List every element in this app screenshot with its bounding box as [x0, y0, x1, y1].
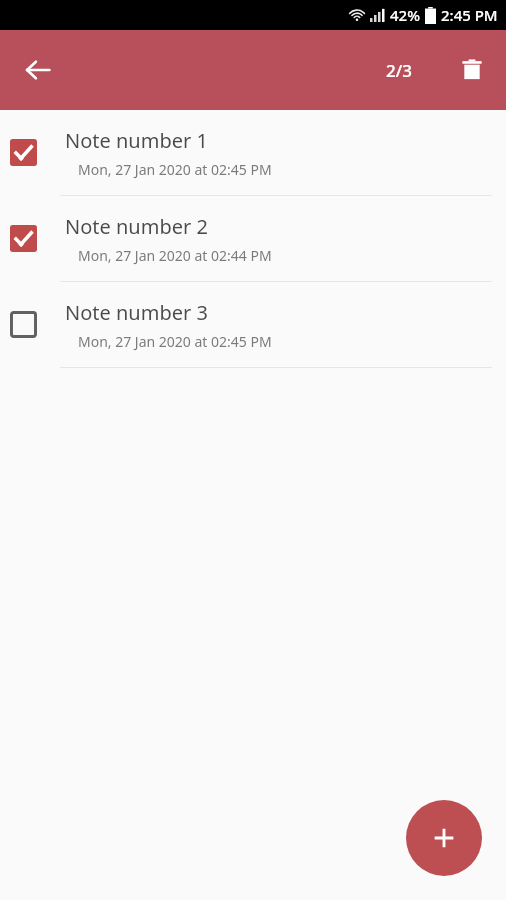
button[interactable]: Unchecked — [10, 311, 37, 338]
button[interactable]: Checked — [0, 196, 506, 281]
button[interactable]: Checked — [0, 110, 506, 195]
staticText: Note number 2 — [65, 213, 208, 240]
staticText: Mon, 27 Jan 2020 at 02:45 PM — [78, 160, 272, 179]
button[interactable]: Checked — [10, 225, 37, 252]
staticText: 2/3 — [386, 59, 412, 82]
button[interactable]: Unchecked — [0, 282, 506, 367]
staticText: Mon, 27 Jan 2020 at 02:44 PM — [78, 246, 272, 265]
button[interactable]: Add note — [406, 800, 482, 876]
staticText: 2:45 PM — [441, 5, 498, 25]
staticText: Mon, 27 Jan 2020 at 02:45 PM — [78, 332, 272, 351]
button[interactable]: Checked — [10, 139, 37, 166]
staticText: 42% — [390, 5, 420, 25]
button[interactable]: Back — [14, 46, 62, 94]
staticText: Note number 3 — [65, 299, 208, 326]
staticText: Note number 1 — [65, 127, 208, 154]
button[interactable]: Delete — [448, 46, 496, 94]
